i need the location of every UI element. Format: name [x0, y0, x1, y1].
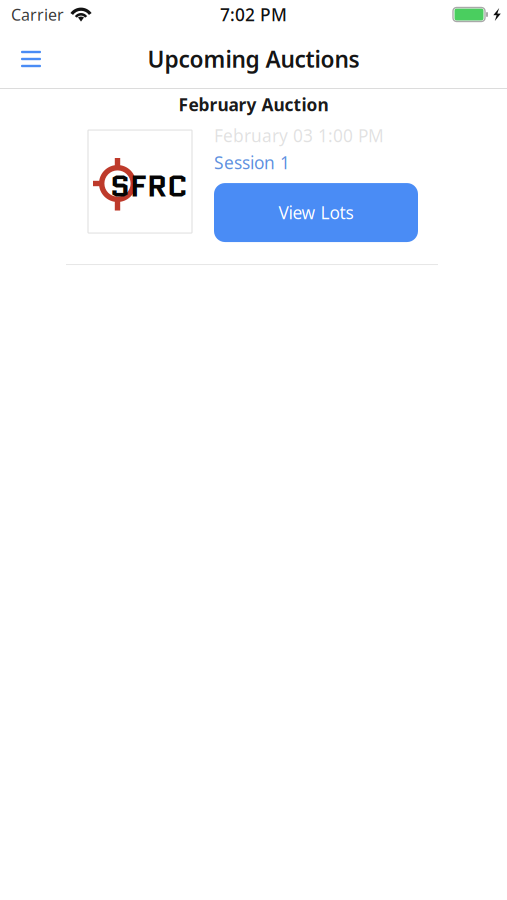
staticText: February 03 1:00 PM — [214, 124, 384, 147]
button[interactable]: Session 1 — [214, 151, 290, 174]
staticText: Session 1 — [214, 151, 290, 174]
staticText: View Lots — [278, 201, 353, 224]
button[interactable]: Menu — [0, 38, 57, 79]
button[interactable]: View Lots — [214, 183, 418, 242]
staticText: Carrier — [11, 4, 64, 25]
staticText: 7:02 PM — [220, 3, 287, 26]
staticText: February Auction — [178, 93, 328, 116]
staticText: SFRC — [110, 164, 188, 208]
staticText: Upcoming Auctions — [147, 44, 359, 74]
